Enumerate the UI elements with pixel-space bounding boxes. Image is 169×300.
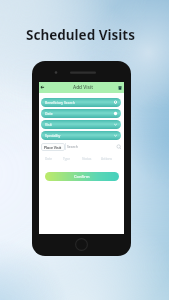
button[interactable]: Date	[41, 109, 121, 118]
staticText: Visit	[45, 122, 113, 127]
button[interactable]: Place Visit	[41, 143, 65, 151]
button[interactable]: Speciality	[41, 131, 121, 140]
staticText: Place Visit	[44, 145, 62, 150]
staticText: Search	[67, 144, 78, 149]
button[interactable]: Visit	[41, 120, 121, 129]
button[interactable]: Delete	[118, 86, 122, 90]
button[interactable]: Back	[40, 85, 45, 90]
button[interactable]: Search	[116, 144, 122, 150]
staticText: Speciality	[45, 133, 113, 138]
button[interactable]: Confirm	[45, 172, 119, 181]
staticText: Status	[82, 157, 101, 161]
staticText: Confirm	[74, 174, 90, 179]
staticText: Actions	[101, 157, 120, 161]
staticText: Date	[45, 157, 63, 161]
staticText: Add Visit	[73, 84, 94, 91]
staticText: Type	[63, 157, 82, 161]
staticText: Date	[45, 111, 113, 116]
staticText: Scheduled Visits	[26, 26, 135, 44]
staticText: Beneficiary Search	[45, 100, 113, 105]
button[interactable]: Beneficiary Search	[41, 98, 121, 107]
